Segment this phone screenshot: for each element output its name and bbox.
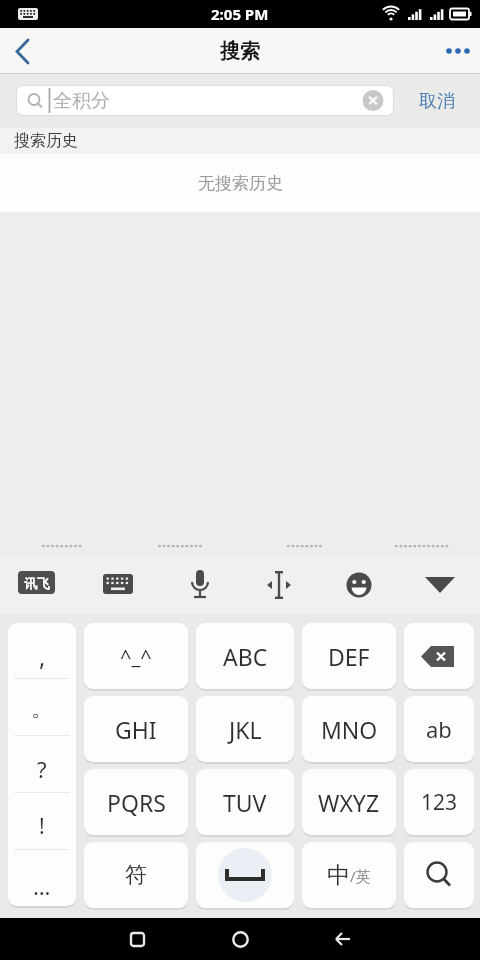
button[interactable] xyxy=(210,918,270,960)
button[interactable]: 全积分 xyxy=(16,85,394,116)
staticText: 取消 xyxy=(419,90,455,113)
staticText: 全积分 xyxy=(53,89,110,113)
button[interactable]: ! xyxy=(8,793,76,849)
button[interactable]: GHI xyxy=(84,696,188,762)
button[interactable] xyxy=(404,842,474,908)
button[interactable]: 符 xyxy=(84,842,188,908)
button[interactable]: WXYZ xyxy=(302,769,396,835)
staticText: 。 xyxy=(31,695,53,723)
button[interactable] xyxy=(94,568,142,600)
button[interactable] xyxy=(404,623,474,689)
staticText: JKL xyxy=(229,714,262,745)
staticText: ab xyxy=(426,714,452,744)
staticText: WXYZ xyxy=(318,787,380,818)
button[interactable]: MNO xyxy=(302,696,396,762)
staticText: … xyxy=(33,871,51,901)
staticText: ^_^ xyxy=(120,643,152,670)
staticText: , xyxy=(39,640,46,673)
button[interactable]: ? xyxy=(8,736,76,792)
button[interactable]: 。 xyxy=(8,679,76,735)
staticText: 符 xyxy=(125,861,147,889)
button[interactable] xyxy=(313,918,373,960)
button[interactable]: , xyxy=(8,623,76,678)
staticText: ABC xyxy=(223,641,268,672)
button[interactable] xyxy=(176,566,224,604)
button[interactable]: … xyxy=(8,850,76,906)
button[interactable]: PQRS xyxy=(84,769,188,835)
button[interactable]: JKL xyxy=(196,696,294,762)
staticText: GHI xyxy=(115,714,157,745)
staticText: 无搜索历史 xyxy=(198,173,283,194)
staticText: ! xyxy=(39,812,45,841)
staticText: 中 xyxy=(327,861,350,890)
button[interactable] xyxy=(196,842,294,908)
button[interactable]: 中 xyxy=(302,842,396,908)
staticText: ? xyxy=(37,754,47,784)
button[interactable]: ab xyxy=(404,696,474,762)
staticText: PQRS xyxy=(107,787,166,818)
staticText: /英 xyxy=(350,866,371,886)
button[interactable]: 无搜索历史 xyxy=(0,154,480,212)
staticText: TUV xyxy=(223,787,267,818)
button[interactable]: ABC xyxy=(196,623,294,689)
staticText: DEF xyxy=(328,641,370,672)
button[interactable] xyxy=(0,28,44,74)
button[interactable]: TUV xyxy=(196,769,294,835)
button[interactable]: 123 xyxy=(404,769,474,835)
button[interactable] xyxy=(107,918,167,960)
staticText: 搜索 xyxy=(220,39,260,64)
button[interactable] xyxy=(436,28,480,74)
staticText: 搜索历史 xyxy=(14,131,78,151)
button[interactable]: ^_^ xyxy=(84,623,188,689)
button[interactable] xyxy=(256,566,302,604)
button[interactable]: 取消 xyxy=(394,74,480,128)
button[interactable] xyxy=(416,566,464,604)
staticText: 2:05 PM xyxy=(211,4,269,24)
button[interactable]: DEF xyxy=(302,623,396,689)
staticText: MNO xyxy=(321,714,378,745)
staticText: 讯飞 xyxy=(24,575,50,591)
staticText: 123 xyxy=(421,788,458,817)
button[interactable] xyxy=(336,566,382,604)
button[interactable]: 讯飞 xyxy=(18,571,55,594)
